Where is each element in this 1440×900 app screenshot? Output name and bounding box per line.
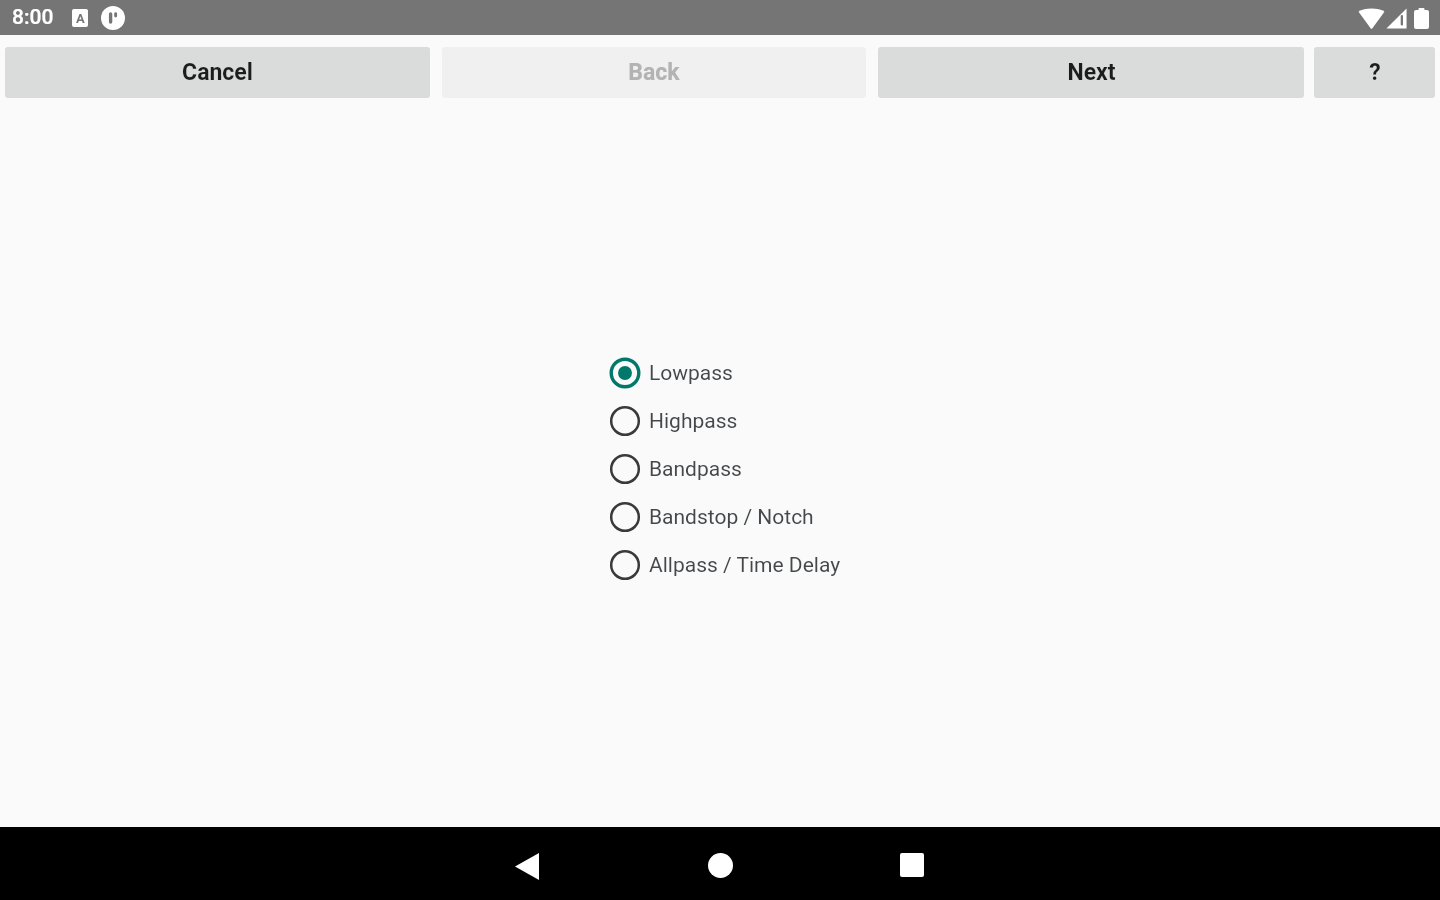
staticText: Back — [628, 59, 680, 86]
staticText: Allpass / Time Delay — [649, 553, 841, 578]
staticText: Bandstop / Notch — [649, 505, 814, 530]
staticText: Lowpass — [649, 361, 733, 386]
staticText: Cancel — [182, 59, 253, 86]
staticText: Next — [1067, 59, 1116, 86]
staticText: Bandpass — [649, 457, 742, 482]
button[interactable]: Recent apps — [900, 853, 924, 877]
button[interactable]: Bandpass — [609, 445, 742, 493]
button[interactable]: Back — [442, 47, 866, 98]
staticText: A — [76, 11, 85, 26]
button[interactable]: Lowpass — [609, 349, 733, 397]
button[interactable]: Next — [878, 47, 1304, 98]
button[interactable]: Cancel — [5, 47, 430, 98]
button[interactable]: ? — [1314, 47, 1435, 98]
staticText: Highpass — [649, 409, 738, 434]
button[interactable]: Highpass — [609, 397, 738, 445]
staticText: ? — [1369, 59, 1381, 86]
button[interactable]: Bandstop / Notch — [609, 493, 814, 541]
button[interactable]: Back — [515, 853, 539, 880]
staticText: 8:00 — [12, 5, 54, 30]
button[interactable]: Home — [708, 853, 733, 878]
button[interactable]: Allpass / Time Delay — [609, 541, 841, 589]
